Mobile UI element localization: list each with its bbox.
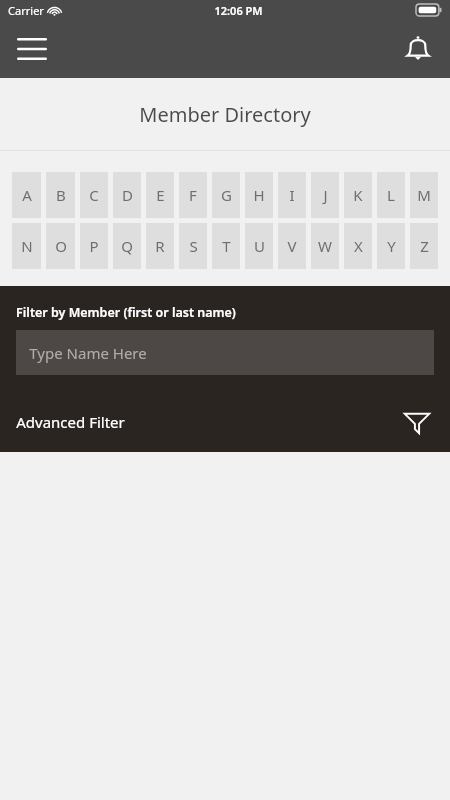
staticText: 12:06 PM [214,3,263,18]
staticText: Member Directory [139,101,311,128]
button[interactable]: Type Name Here [16,330,434,375]
button[interactable]: R [146,223,174,269]
button[interactable]: F [179,172,207,218]
staticText: O [55,236,67,256]
button[interactable]: O [46,223,75,269]
button[interactable]: Advanced Filter [16,396,434,448]
staticText: J [323,185,328,205]
staticText: M [417,185,431,205]
staticText: P [89,236,99,256]
staticText: E [156,185,165,205]
staticText: Advanced Filter [16,412,125,432]
button[interactable]: P [80,223,108,269]
button[interactable]: S [179,223,207,269]
staticText: A [22,185,32,205]
button[interactable]: N [12,223,41,269]
staticText: Type Name Here [29,343,147,363]
button[interactable]: K [344,172,372,218]
button[interactable]: J [311,172,339,218]
button[interactable]: D [113,172,141,218]
button[interactable]: C [80,172,108,218]
button[interactable]: Menu [8,25,56,73]
staticText: I [289,185,295,205]
staticText: Filter by Member (first or last name) [16,304,236,321]
button[interactable]: B [46,172,75,218]
staticText: V [287,236,297,256]
button[interactable]: H [245,172,273,218]
button[interactable]: I [278,172,306,218]
button[interactable]: G [212,172,240,218]
staticText: X [354,236,363,256]
button[interactable]: A [12,172,41,218]
staticText: Q [121,236,133,256]
button[interactable]: L [377,172,405,218]
staticText: G [221,185,232,205]
button[interactable]: M [410,172,438,218]
staticText: C [89,185,99,205]
button[interactable]: Y [377,223,405,269]
staticText: W [318,236,332,256]
staticText: Carrier [8,3,44,18]
button[interactable]: Notifications [394,25,442,73]
button[interactable]: X [344,223,372,269]
staticText: T [222,236,231,256]
other: Advanced Filter [400,405,434,439]
staticText: B [56,185,66,205]
button[interactable]: Q [113,223,141,269]
staticText: H [253,185,265,205]
staticText: R [155,236,165,256]
staticText: F [189,185,197,205]
staticText: D [122,185,133,205]
button[interactable]: Z [410,223,438,269]
staticText: K [353,185,363,205]
button[interactable]: V [278,223,306,269]
staticText: Z [420,236,429,256]
staticText: L [387,185,395,205]
button[interactable]: W [311,223,339,269]
button[interactable]: E [146,172,174,218]
button[interactable]: T [212,223,240,269]
staticText: N [21,236,33,256]
staticText: Y [387,236,396,256]
staticText: U [254,236,265,256]
button[interactable]: U [245,223,273,269]
staticText: S [189,236,198,256]
